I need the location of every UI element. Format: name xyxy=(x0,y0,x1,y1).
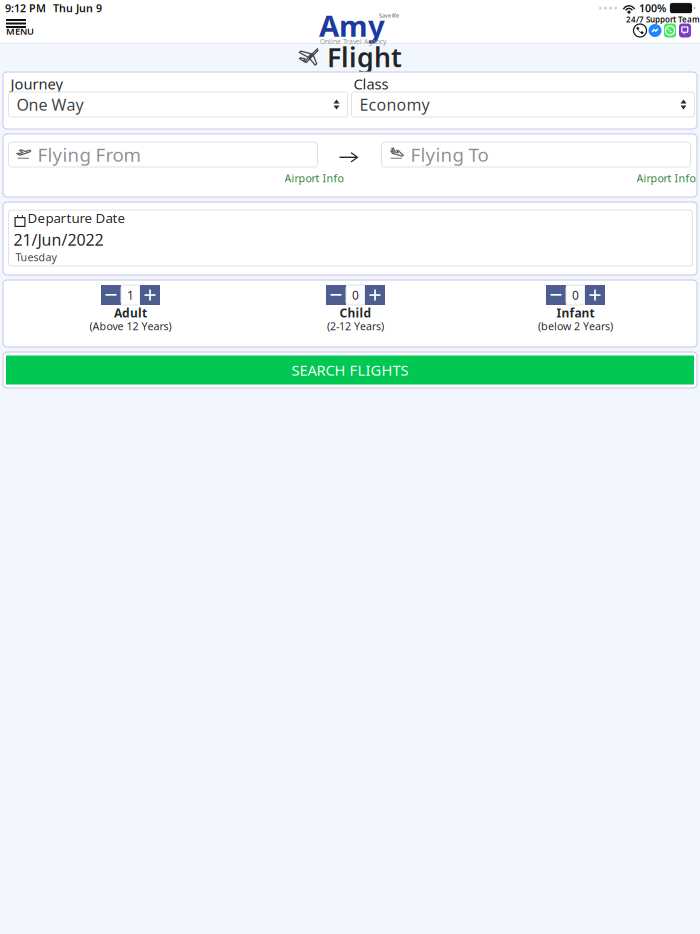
staticText: 100% xyxy=(639,1,666,15)
staticText: Amy xyxy=(319,6,385,45)
staticText: MENU xyxy=(6,25,34,37)
button[interactable]: Increase Child xyxy=(365,285,385,305)
staticText: 9:12 PM xyxy=(5,1,46,15)
staticText: Flying From xyxy=(37,142,140,167)
staticText: Infant xyxy=(556,305,594,321)
staticText: Airport Info xyxy=(636,171,695,185)
staticText: Adult xyxy=(114,305,147,321)
staticText: Departure Date xyxy=(27,209,125,227)
button[interactable]: Decrease Adult xyxy=(101,285,121,305)
button[interactable]: Increase Adult xyxy=(140,285,160,305)
button[interactable]: Economy xyxy=(351,92,694,117)
staticText: Class xyxy=(353,74,388,93)
staticText: 1 xyxy=(127,287,134,303)
button[interactable]: Decrease Child xyxy=(326,285,346,305)
button[interactable]: Flying From xyxy=(8,142,317,167)
button[interactable]: Airport Info xyxy=(284,171,343,185)
staticText: Thu Jun 9 xyxy=(53,1,102,15)
button[interactable]: 24/7 Support Team xyxy=(626,16,694,41)
button[interactable]: SEARCH FLIGHTS xyxy=(6,355,694,384)
staticText: Flying To xyxy=(410,142,488,167)
button[interactable]: One Way xyxy=(8,92,347,117)
button[interactable]: Decrease Infant xyxy=(546,285,566,305)
staticText: Economy xyxy=(359,94,429,115)
staticText: One Way xyxy=(16,94,83,115)
staticText: Journey xyxy=(10,74,62,93)
staticText: SEARCH FLIGHTS xyxy=(291,360,408,380)
staticText: Tuesday xyxy=(15,250,56,264)
staticText: Save life xyxy=(379,12,399,19)
button[interactable]: Menu xyxy=(6,19,28,36)
staticText: Child xyxy=(339,305,371,321)
button[interactable]: Airport Info xyxy=(636,171,695,185)
button[interactable]: Flying To xyxy=(381,142,690,167)
staticText: 0 xyxy=(352,287,359,303)
button[interactable]: Departure Date xyxy=(8,210,692,266)
staticText: 0 xyxy=(572,287,579,303)
staticText: (below 2 Years) xyxy=(538,319,613,333)
button[interactable]: Amy Online Travel Agency home xyxy=(317,14,389,42)
staticText: Airport Info xyxy=(284,171,343,185)
staticText: 21/Jun/2022 xyxy=(13,229,103,250)
staticText: (2-12 Years) xyxy=(327,319,384,333)
staticText: 24/7 Support Team xyxy=(626,14,700,25)
button[interactable]: Increase Infant xyxy=(585,285,605,305)
staticText: (Above 12 Years) xyxy=(89,319,171,333)
staticText: Flight xyxy=(327,39,402,75)
staticText: Online Travel Agency xyxy=(320,37,386,46)
